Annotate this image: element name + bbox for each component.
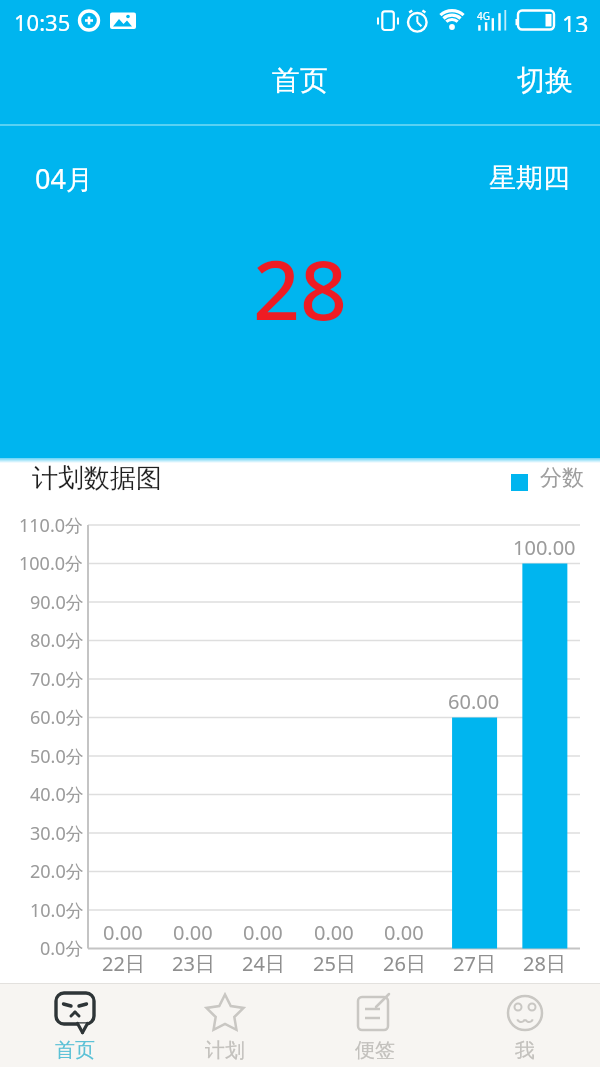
staticText: 100.00 (513, 534, 576, 560)
staticText: 10:35 (14, 7, 71, 31)
staticText: 22日 (102, 950, 145, 976)
staticText: 60.0分 (30, 705, 84, 730)
staticText: 0.00 (243, 919, 283, 945)
staticText: 我 (515, 1038, 535, 1063)
staticText: 分数 (540, 464, 584, 492)
staticText: 0.0分 (40, 936, 84, 961)
staticText: 首页 (55, 1038, 95, 1063)
staticText: 星期四 (489, 161, 570, 195)
staticText: 28 (253, 232, 347, 342)
staticText: 60.00 (448, 688, 500, 714)
staticText: 0.00 (103, 919, 143, 945)
staticText: 23日 (172, 950, 215, 976)
staticText: 40.0分 (30, 782, 84, 807)
staticText: 0.00 (173, 919, 213, 945)
staticText: 切换 (517, 63, 573, 98)
staticText: 90.0分 (30, 590, 84, 615)
staticText: 25日 (313, 950, 356, 976)
staticText: 20.0分 (30, 859, 84, 884)
staticText: 24日 (242, 950, 285, 976)
staticText: 首页 (272, 63, 328, 98)
staticText: 100.0分 (19, 551, 84, 576)
staticText: 80.0分 (30, 628, 84, 653)
button[interactable]: 切换 (483, 48, 573, 112)
staticText: 13 (562, 8, 589, 32)
staticText: 70.0分 (30, 667, 84, 692)
staticText: 50.0分 (30, 744, 84, 769)
staticText: 28日 (523, 950, 566, 976)
button[interactable]: 首页 (0, 983, 150, 1067)
staticText: 30.0分 (30, 821, 84, 846)
button[interactable]: 计划 (150, 983, 300, 1067)
staticText: 4G (477, 9, 490, 21)
staticText: 计划数据图 (32, 462, 162, 494)
staticText: 10.0分 (30, 898, 84, 923)
staticText: 便签 (355, 1038, 395, 1063)
button[interactable]: 28 (0, 232, 600, 342)
staticText: 0.00 (384, 919, 424, 945)
button[interactable]: 便签 (300, 983, 450, 1067)
button[interactable]: 首页 (255, 48, 345, 112)
button[interactable]: 我 (450, 983, 600, 1067)
staticText: 110.0分 (19, 513, 84, 538)
staticText: 04月 (35, 160, 93, 196)
staticText: 计划 (205, 1038, 245, 1063)
staticText: 0.00 (314, 919, 354, 945)
staticText: 26日 (383, 950, 426, 976)
staticText: 27日 (453, 950, 496, 976)
